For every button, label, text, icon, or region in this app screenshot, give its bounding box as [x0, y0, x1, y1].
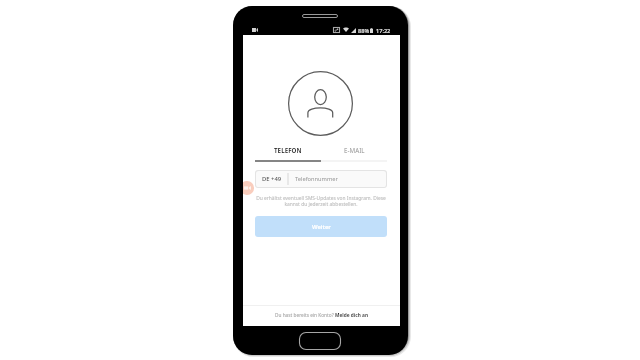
staticText: 88% [358, 27, 370, 35]
button[interactable]: DE +49 [256, 171, 386, 187]
staticText: TELEFON [274, 146, 302, 154]
staticText: Telefonnummer [295, 175, 338, 183]
button[interactable]: Weiter [255, 216, 387, 237]
staticText: E-MAIL [344, 146, 365, 154]
staticText: Du hast bereits ein Konto? Melde dich an [275, 312, 369, 319]
button[interactable]: Record video [243, 181, 254, 195]
button[interactable]: Du hast bereits ein Konto? Melde dich an [243, 305, 400, 325]
button[interactable]: Home [299, 332, 341, 350]
button[interactable]: TELEFON [255, 146, 321, 162]
staticText: DE +49 [262, 175, 282, 183]
staticText: Weiter [312, 223, 331, 231]
staticText: kannst du jederzeit abbestellen. [255, 201, 387, 208]
button[interactable]: E-MAIL [321, 146, 387, 162]
staticText: Du erhältst eventuell SMS-Updates von In… [255, 195, 387, 202]
staticText: 17:22 [376, 27, 391, 35]
